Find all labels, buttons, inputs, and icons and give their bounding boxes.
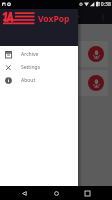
button[interactable]: Recents	[81, 187, 94, 200]
button[interactable]: Archive	[0, 48, 78, 61]
button[interactable]: More options	[97, 11, 109, 23]
button[interactable]: About	[0, 74, 78, 87]
staticText: 10:38	[98, 1, 111, 8]
button[interactable]: Record	[88, 46, 104, 62]
staticText: VoxPop	[38, 13, 70, 25]
staticText: About	[21, 77, 36, 84]
staticText: Archive	[21, 51, 39, 58]
button[interactable]: Home	[50, 187, 63, 200]
button[interactable]: Record	[88, 75, 104, 91]
button[interactable]: Record	[4, 41, 108, 67]
button[interactable]: Back	[18, 187, 31, 200]
button[interactable]: Settings	[0, 61, 78, 74]
button[interactable]: Record	[4, 70, 108, 96]
staticText: Settings	[21, 64, 41, 71]
